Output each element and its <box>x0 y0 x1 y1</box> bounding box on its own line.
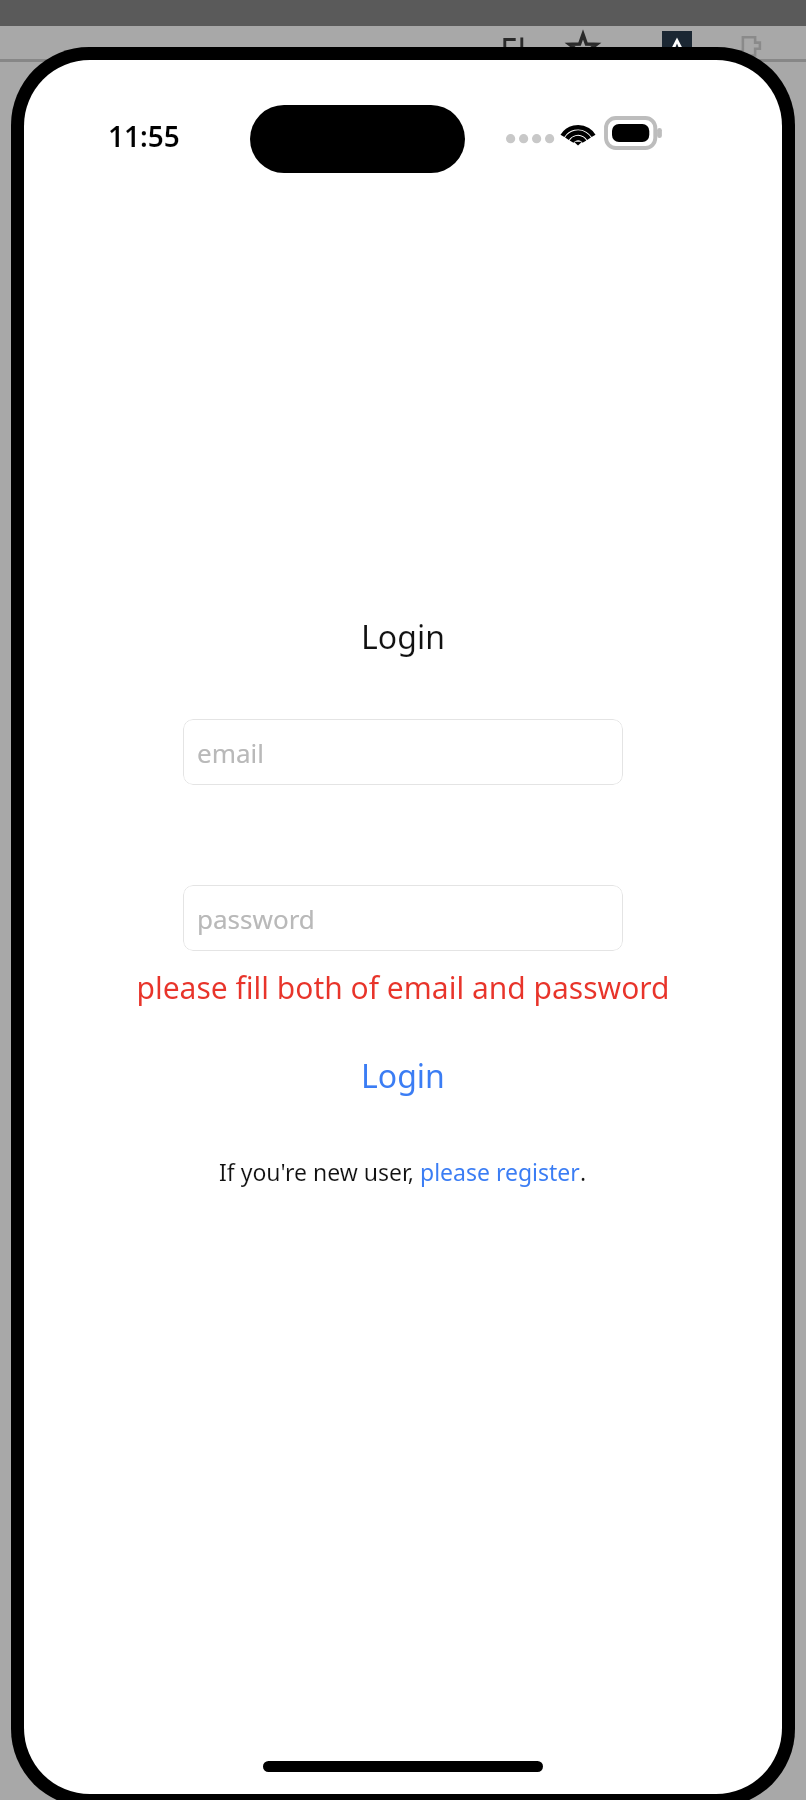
button[interactable]: please register <box>420 1156 580 1187</box>
button[interactable]: Extensions <box>732 29 766 63</box>
staticText: email <box>197 735 264 770</box>
button[interactable]: Bookmark <box>566 30 600 64</box>
staticText: . <box>580 1156 587 1187</box>
staticText: 11:55 <box>108 117 180 155</box>
button[interactable]: Downloads <box>498 30 532 64</box>
staticText: please fill both of email and password <box>136 967 670 1008</box>
staticText: please register <box>420 1156 580 1187</box>
button[interactable]: email <box>183 719 623 785</box>
staticText: If you're new user, <box>219 1156 420 1187</box>
button[interactable]: Login <box>345 1050 461 1102</box>
button[interactable]: App <box>662 31 692 61</box>
staticText: Login <box>361 615 445 659</box>
button[interactable]: password <box>183 885 623 951</box>
staticText: password <box>197 901 315 936</box>
staticText: Login <box>361 1054 445 1098</box>
